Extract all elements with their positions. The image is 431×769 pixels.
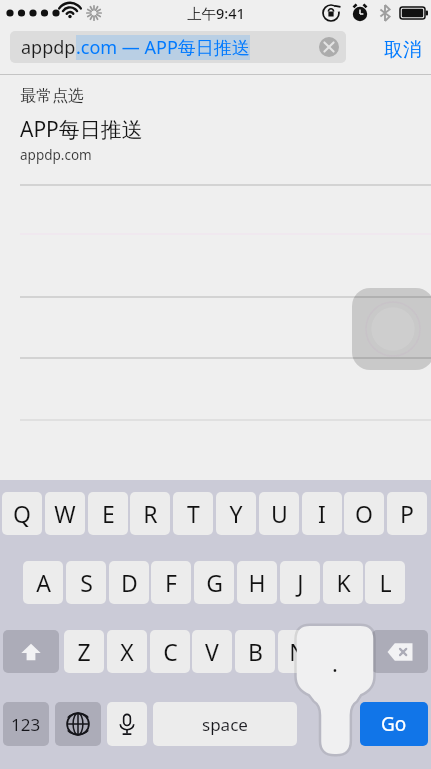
staticText: V (205, 636, 219, 667)
staticText: APP每日推送 (20, 115, 143, 144)
staticText: I (318, 498, 326, 529)
staticText: A (36, 567, 51, 598)
staticText: W (54, 498, 76, 529)
button[interactable]: Next keyboard (55, 702, 101, 746)
staticText: 取消 (384, 38, 422, 62)
button[interactable]: Z (64, 630, 104, 673)
staticText: G (206, 567, 223, 598)
staticText: . (332, 648, 338, 678)
staticText: P (400, 498, 414, 529)
button[interactable]: P (387, 492, 427, 535)
staticText: space (202, 713, 248, 736)
button[interactable]: K (323, 561, 363, 604)
staticText: R (143, 498, 158, 529)
button[interactable]: B (235, 630, 275, 673)
button[interactable]: APP每日推送 (0, 106, 431, 164)
button[interactable]: M (321, 630, 361, 673)
button[interactable]: V (192, 630, 232, 673)
staticText: appdp.com (20, 146, 92, 164)
staticText: F (165, 567, 177, 598)
button[interactable]: U (259, 492, 299, 535)
staticText: 最常点选 (20, 86, 84, 106)
button[interactable]: Dictation (107, 702, 147, 746)
button[interactable]: O (344, 492, 384, 535)
staticText: E (102, 498, 115, 529)
button[interactable]: I (302, 492, 342, 535)
button[interactable]: space (153, 702, 297, 746)
button[interactable]: Delete (372, 630, 428, 673)
button[interactable]: A (23, 561, 63, 604)
button[interactable]: N (278, 630, 318, 673)
button[interactable]: J (280, 561, 320, 604)
staticText: .com — APP每日推送 (76, 35, 250, 60)
button[interactable]: F (151, 561, 191, 604)
staticText: T (187, 498, 200, 529)
button[interactable]: Q (2, 492, 42, 535)
staticText: O (355, 498, 373, 529)
button[interactable]: 取消 (384, 38, 422, 62)
button[interactable]: Clear (319, 37, 339, 57)
staticText: Z (77, 636, 91, 667)
button[interactable]: appdp (10, 31, 346, 63)
button[interactable]: S (66, 561, 106, 604)
staticText: J (297, 567, 304, 598)
staticText: Go (381, 711, 407, 737)
button[interactable]: Y (216, 492, 256, 535)
staticText: N (289, 636, 307, 667)
staticText: Y (229, 498, 243, 529)
staticText: U (271, 498, 288, 529)
staticText: S (80, 567, 93, 598)
button[interactable]: E (88, 492, 128, 535)
button[interactable]: G (194, 561, 234, 604)
button[interactable]: 123 (3, 702, 49, 746)
staticText: H (248, 567, 266, 598)
button[interactable]: X (107, 630, 147, 673)
button[interactable]: AssistiveTouch (352, 288, 431, 370)
staticText: L (379, 567, 392, 598)
button[interactable]: R (130, 492, 170, 535)
button[interactable]: D (109, 561, 149, 604)
staticText: 上午9:41 (187, 3, 245, 23)
button[interactable]: L (365, 561, 405, 604)
staticText: B (248, 636, 263, 667)
button[interactable]: T (173, 492, 213, 535)
button[interactable] (3, 630, 59, 673)
staticText: Q (13, 498, 31, 529)
button[interactable]: W (45, 492, 85, 535)
button[interactable]: Go (360, 702, 428, 746)
button[interactable]: H (237, 561, 277, 604)
staticText: appdp (21, 35, 76, 60)
staticText: X (120, 636, 134, 667)
staticText: 123 (11, 713, 41, 736)
button[interactable]: C (150, 630, 190, 673)
staticText: C (163, 636, 178, 667)
staticText: K (336, 567, 351, 598)
staticText: D (121, 567, 138, 598)
